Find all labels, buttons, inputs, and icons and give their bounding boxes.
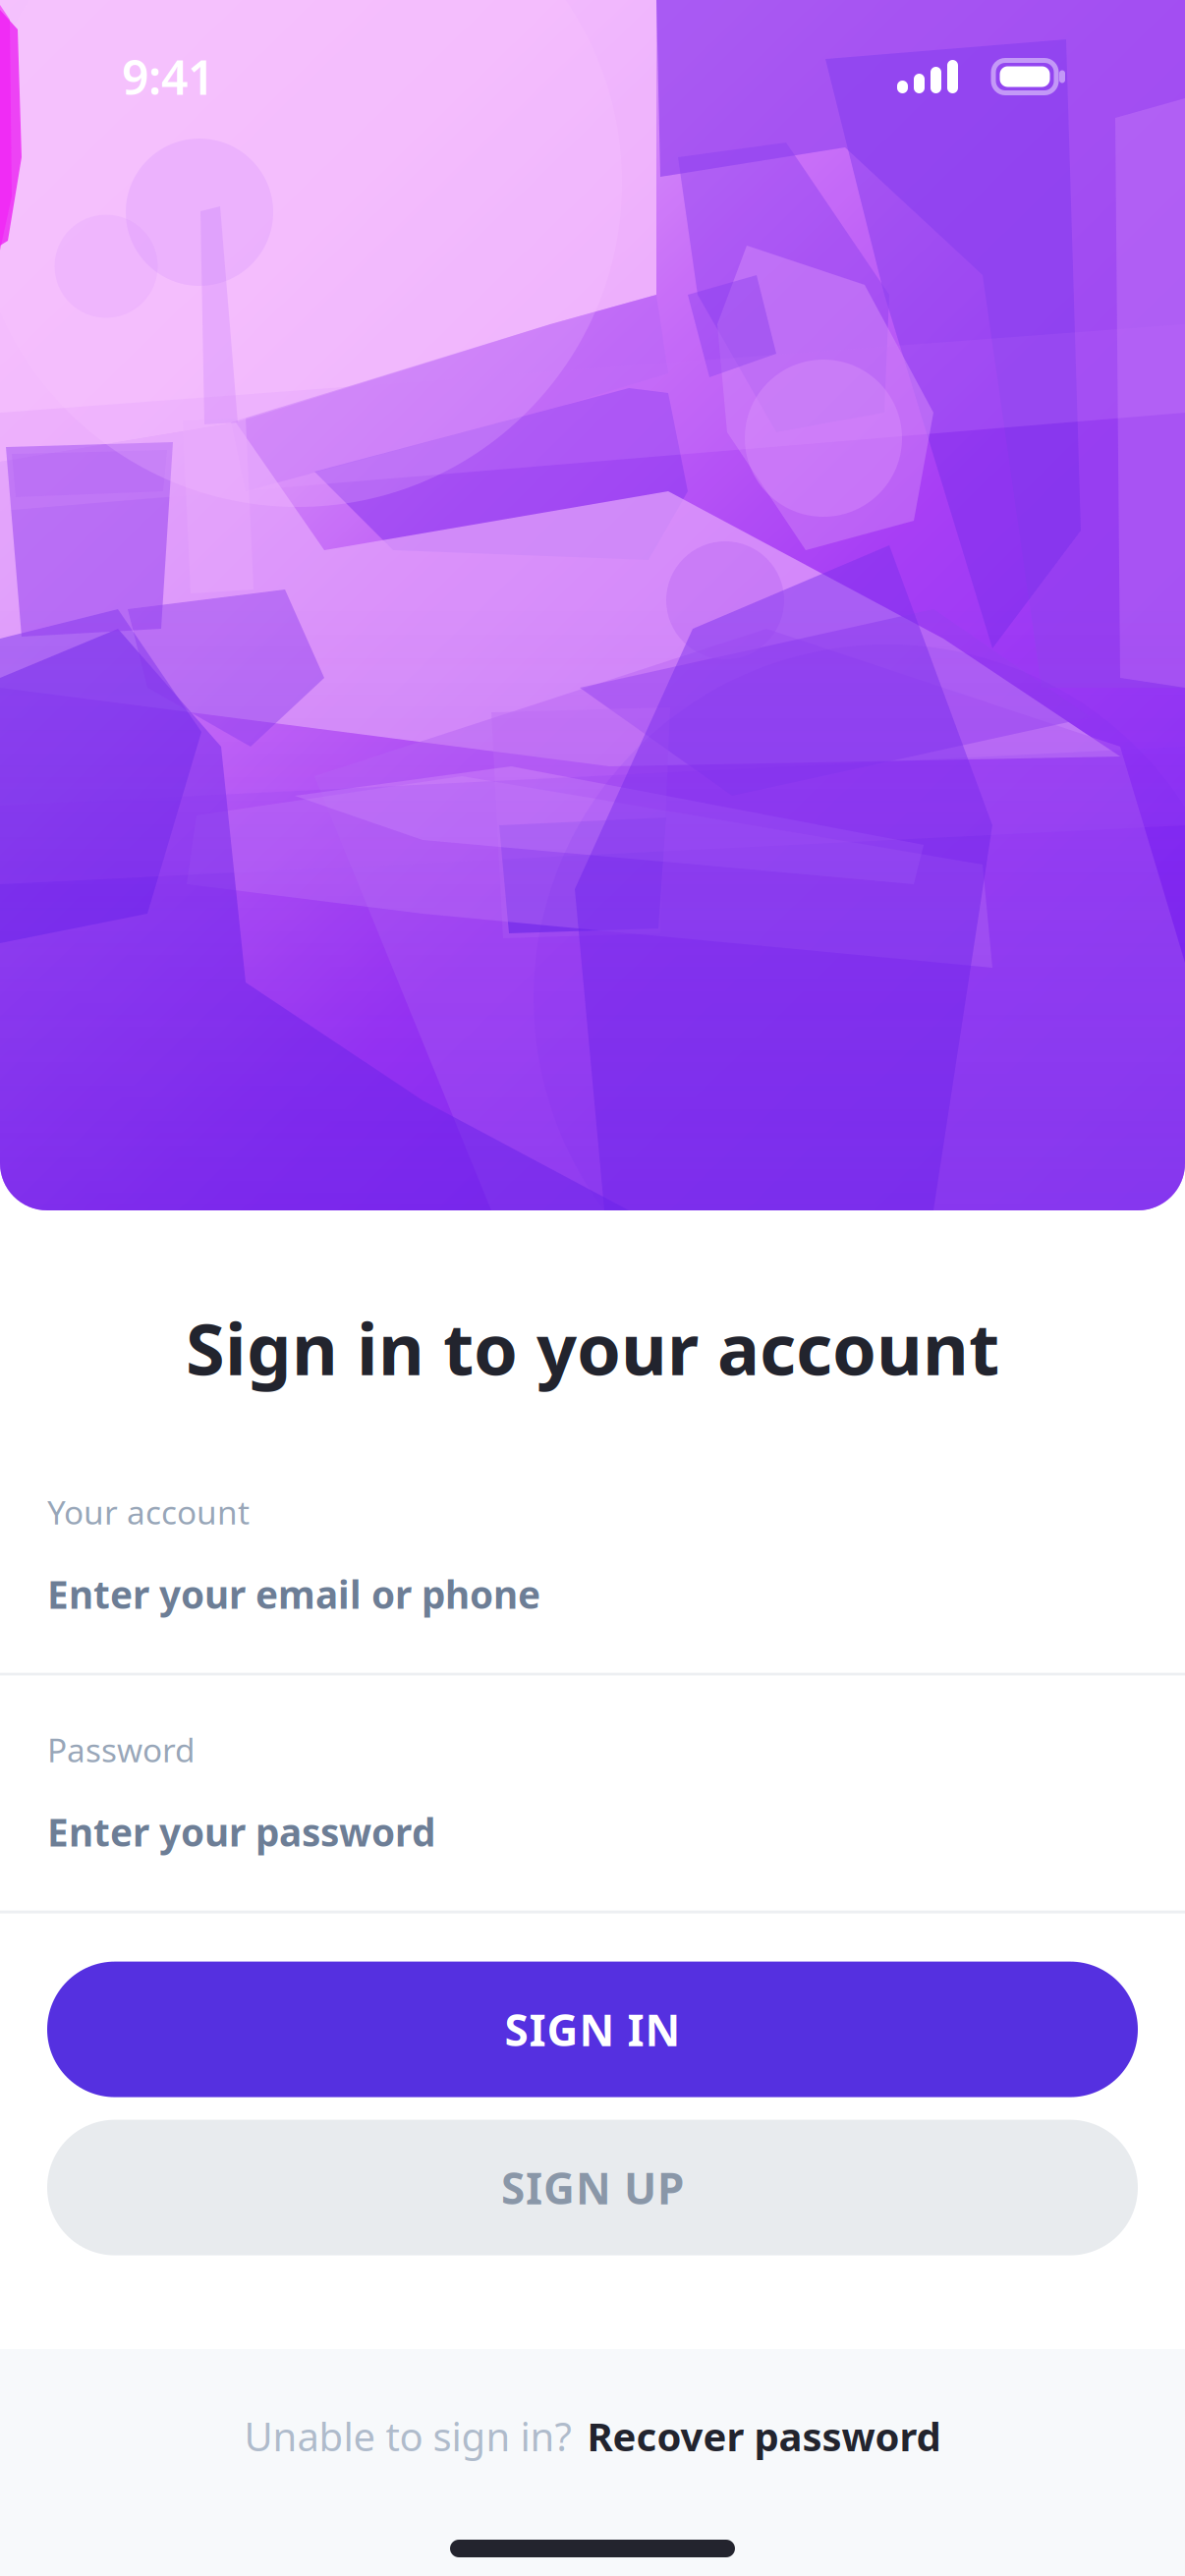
- staticText: SIGN UP: [501, 2159, 684, 2216]
- button[interactable]: Password: [0, 1676, 1185, 1910]
- staticText: Your account: [47, 1490, 250, 1534]
- button[interactable]: SIGN UP: [47, 2120, 1138, 2255]
- button[interactable]: SIGN IN: [47, 1962, 1138, 2097]
- button[interactable]: Unable to sign in?: [244, 2410, 941, 2462]
- button[interactable]: Your account: [0, 1438, 1185, 1673]
- staticText: Sign in to your account: [186, 1301, 999, 1395]
- staticText: SIGN IN: [505, 2001, 680, 2058]
- staticText: Recover password: [587, 2410, 941, 2462]
- staticText: Password: [47, 1728, 196, 1771]
- staticText: Unable to sign in?: [244, 2410, 571, 2462]
- staticText: 9:41: [122, 45, 214, 108]
- staticText: Enter your password: [47, 1807, 435, 1857]
- staticText: Enter your email or phone: [47, 1569, 540, 1619]
